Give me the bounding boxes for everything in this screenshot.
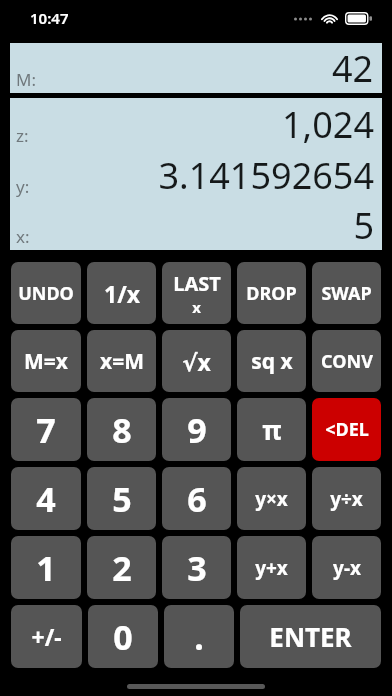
button[interactable]: 8	[87, 398, 156, 461]
button[interactable]: ENTER	[240, 605, 381, 668]
staticText: 5	[112, 476, 132, 522]
staticText: 6	[187, 476, 207, 522]
button[interactable]: M=x	[11, 330, 81, 392]
staticText: 3	[187, 545, 207, 591]
staticText: y+x	[255, 555, 288, 581]
button[interactable]: 6	[162, 467, 231, 530]
staticText: 1/x	[104, 278, 140, 309]
staticText: 0	[113, 614, 133, 660]
button[interactable]: y+x	[237, 536, 306, 599]
staticText: x	[192, 297, 201, 317]
button[interactable]: .	[164, 605, 234, 668]
button[interactable]: y-x	[312, 536, 381, 599]
button[interactable]: 9	[162, 398, 231, 461]
button[interactable]: y÷x	[312, 467, 381, 530]
staticText: UNDO	[18, 281, 74, 306]
staticText: y:	[16, 175, 30, 198]
button[interactable]: √x	[162, 330, 231, 392]
staticText: y×x	[255, 486, 288, 512]
staticText: √x	[182, 346, 211, 377]
staticText: SWAP	[321, 281, 372, 306]
button[interactable]: 5	[87, 467, 156, 530]
staticText: DROP	[246, 281, 297, 306]
button[interactable]: <DEL	[312, 398, 381, 461]
staticText: CONV	[321, 349, 373, 374]
staticText: 42	[332, 44, 374, 93]
staticText: 7	[36, 407, 56, 453]
staticText: x=M	[100, 347, 144, 376]
button[interactable]: 4	[11, 467, 81, 530]
button[interactable]: 7	[11, 398, 81, 461]
staticText: 10:47	[30, 8, 69, 28]
staticText: 2	[112, 545, 132, 591]
staticText: 4	[36, 476, 56, 522]
staticText: y÷x	[330, 486, 363, 512]
button[interactable]: 2	[87, 536, 156, 599]
staticText: 9	[187, 407, 207, 453]
staticText: .	[194, 614, 204, 660]
button[interactable]: y×x	[237, 467, 306, 530]
button[interactable]: 3	[162, 536, 231, 599]
staticText: π	[262, 412, 282, 447]
staticText: 8	[112, 407, 132, 453]
staticText: LAST	[173, 270, 221, 297]
staticText: sq x	[251, 347, 293, 376]
button[interactable]: 1/x	[87, 262, 156, 324]
staticText: M:	[16, 68, 36, 91]
staticText: 1,024	[281, 100, 374, 149]
button[interactable]: sq x	[237, 330, 306, 392]
staticText: x:	[16, 225, 30, 248]
button[interactable]: π	[237, 398, 306, 461]
button[interactable]: SWAP	[312, 262, 381, 324]
button[interactable]: UNDO	[11, 262, 81, 324]
button[interactable]: +/-	[11, 605, 82, 668]
staticText: 3.141592654	[158, 151, 374, 200]
staticText: +/-	[31, 621, 62, 652]
staticText: M=x	[24, 347, 68, 376]
button[interactable]: DROP	[237, 262, 306, 324]
button[interactable]: 1	[11, 536, 81, 599]
button[interactable]: 0	[88, 605, 158, 668]
staticText: 1	[36, 545, 56, 591]
staticText: ENTER	[269, 619, 352, 654]
staticText: <DEL	[325, 417, 369, 442]
button[interactable]: x=M	[87, 330, 156, 392]
button[interactable]: LASTx	[162, 262, 231, 324]
staticText: y-x	[333, 555, 361, 581]
button[interactable]: CONV	[312, 330, 381, 392]
staticText: 5	[353, 201, 374, 250]
staticText: z:	[16, 124, 29, 147]
